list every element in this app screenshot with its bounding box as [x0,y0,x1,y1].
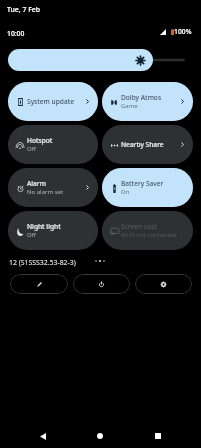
staticText: Game [121,102,138,110]
staticText: Hotspot [27,136,53,145]
staticText: 12 (S1SSS32.53-82-3) [9,258,76,267]
button[interactable]: Alarm [8,168,98,207]
staticText: Off [27,231,36,239]
button[interactable]: Nearby Share [102,125,193,164]
button[interactable]: System update [8,82,98,121]
staticText: Battery Saver [121,179,164,188]
staticText: Tue, 7 Feb [7,5,41,14]
button[interactable]: Screen cast [102,211,193,250]
button[interactable]: Brightness [8,49,153,71]
staticText: Off [27,145,36,153]
staticText: 100% [174,27,192,36]
button[interactable]: Dolby Atmos [102,82,193,121]
button[interactable]: Back [30,423,56,448]
staticText: Screen cast [121,222,157,231]
button[interactable]: Battery Saver [102,168,193,207]
button[interactable]: Home [87,423,113,448]
staticText: Dolby Atmos [121,93,162,102]
staticText: 10:00 [7,29,25,38]
staticText: No alarm set [27,188,64,196]
staticText: Wi-Fi not connected [121,231,177,239]
staticText: System update [27,97,74,106]
button[interactable]: Recents [145,423,171,448]
staticText: Nearby Share [121,140,164,149]
button[interactable]: Power [73,274,130,294]
staticText: Night light [27,222,61,231]
button[interactable]: Edit [10,274,68,294]
staticText: Alarm [27,179,46,188]
button[interactable]: Hotspot [8,125,98,164]
button[interactable]: Night light [8,211,98,250]
button[interactable]: Settings [135,274,192,294]
staticText: On [121,188,130,196]
